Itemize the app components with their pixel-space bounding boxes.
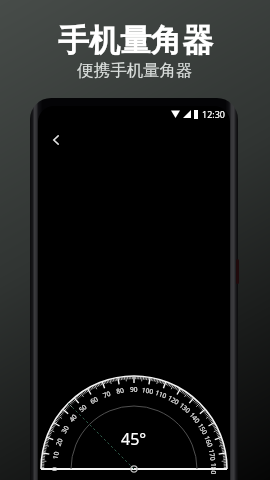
staticText: 便携手机量角器 (77, 60, 193, 81)
staticText: 12:30 (202, 108, 226, 120)
staticText: 手机量角器 (58, 21, 213, 60)
button[interactable]: Back (45, 129, 67, 151)
